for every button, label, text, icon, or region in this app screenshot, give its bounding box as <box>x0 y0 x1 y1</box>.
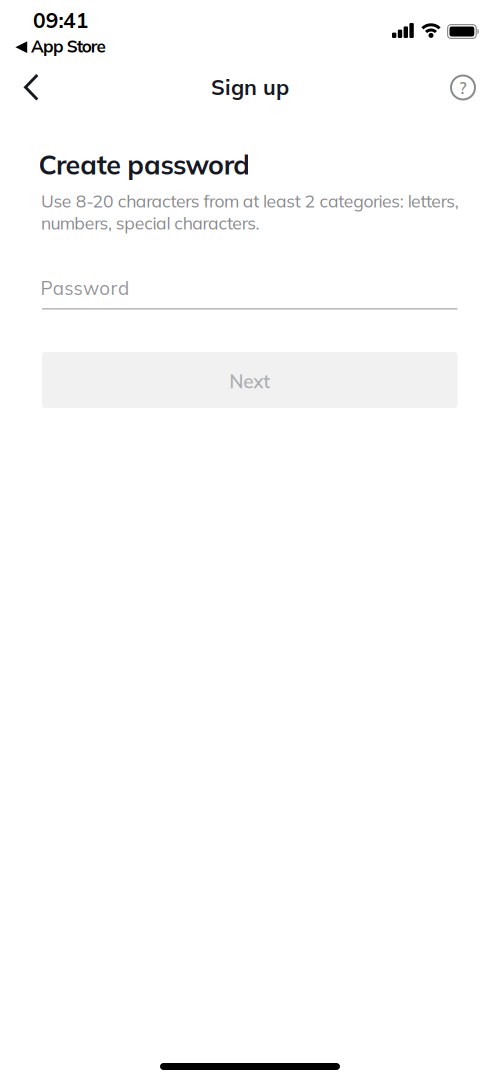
staticText: Sign up <box>211 73 289 100</box>
button[interactable]: Help <box>436 61 489 114</box>
staticText: Use 8-20 characters from at least 2 cate… <box>41 190 459 234</box>
button[interactable]: Back <box>10 59 53 115</box>
button[interactable]: Password <box>42 276 457 320</box>
staticText: Next <box>229 369 270 393</box>
staticText: ? <box>459 77 467 98</box>
staticText: App Store <box>31 35 106 57</box>
staticText: Create password <box>38 147 250 181</box>
staticText: Password <box>40 276 129 300</box>
button[interactable]: Next <box>42 352 457 408</box>
staticText: 09:41 <box>33 7 89 33</box>
